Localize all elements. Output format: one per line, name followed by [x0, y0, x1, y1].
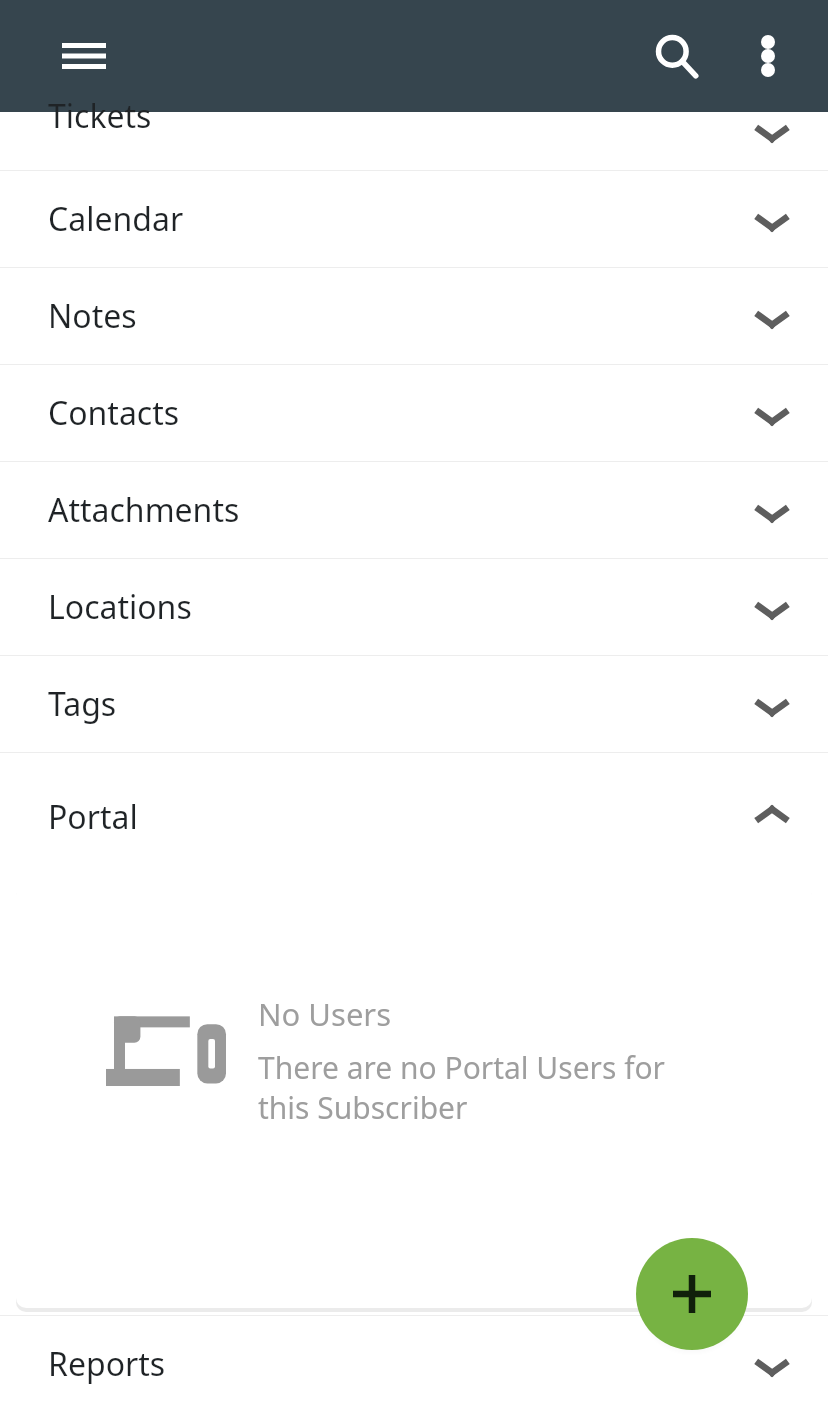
button[interactable]: Add portal user [636, 1238, 748, 1350]
button[interactable]: Attachments [0, 462, 828, 558]
staticText: Attachments [48, 488, 240, 532]
button[interactable]: Search [628, 8, 724, 104]
staticText: Contacts [48, 391, 180, 435]
button[interactable]: No Users [16, 885, 812, 1308]
button[interactable]: Tags [0, 656, 828, 752]
staticText: There are no Portal Users for this Subsc… [258, 1047, 678, 1128]
button[interactable]: Calendar [0, 171, 828, 267]
button[interactable]: Open navigation menu [40, 12, 128, 100]
staticText: Tickets [48, 94, 152, 138]
button[interactable]: Notes [0, 268, 828, 364]
button[interactable]: Locations [0, 559, 828, 655]
button[interactable]: More options [724, 12, 812, 100]
button[interactable]: Tickets [0, 112, 828, 170]
staticText: Locations [48, 585, 192, 629]
button[interactable]: Contacts [0, 365, 828, 461]
staticText: Reports [48, 1342, 166, 1386]
staticText: Calendar [48, 197, 184, 241]
button[interactable]: Reports [0, 1316, 828, 1412]
staticText: Portal [48, 795, 138, 839]
staticText: Notes [48, 294, 137, 338]
button[interactable]: Portal [0, 753, 828, 885]
staticText: No Users [258, 993, 392, 1035]
staticText: Tags [48, 682, 117, 726]
